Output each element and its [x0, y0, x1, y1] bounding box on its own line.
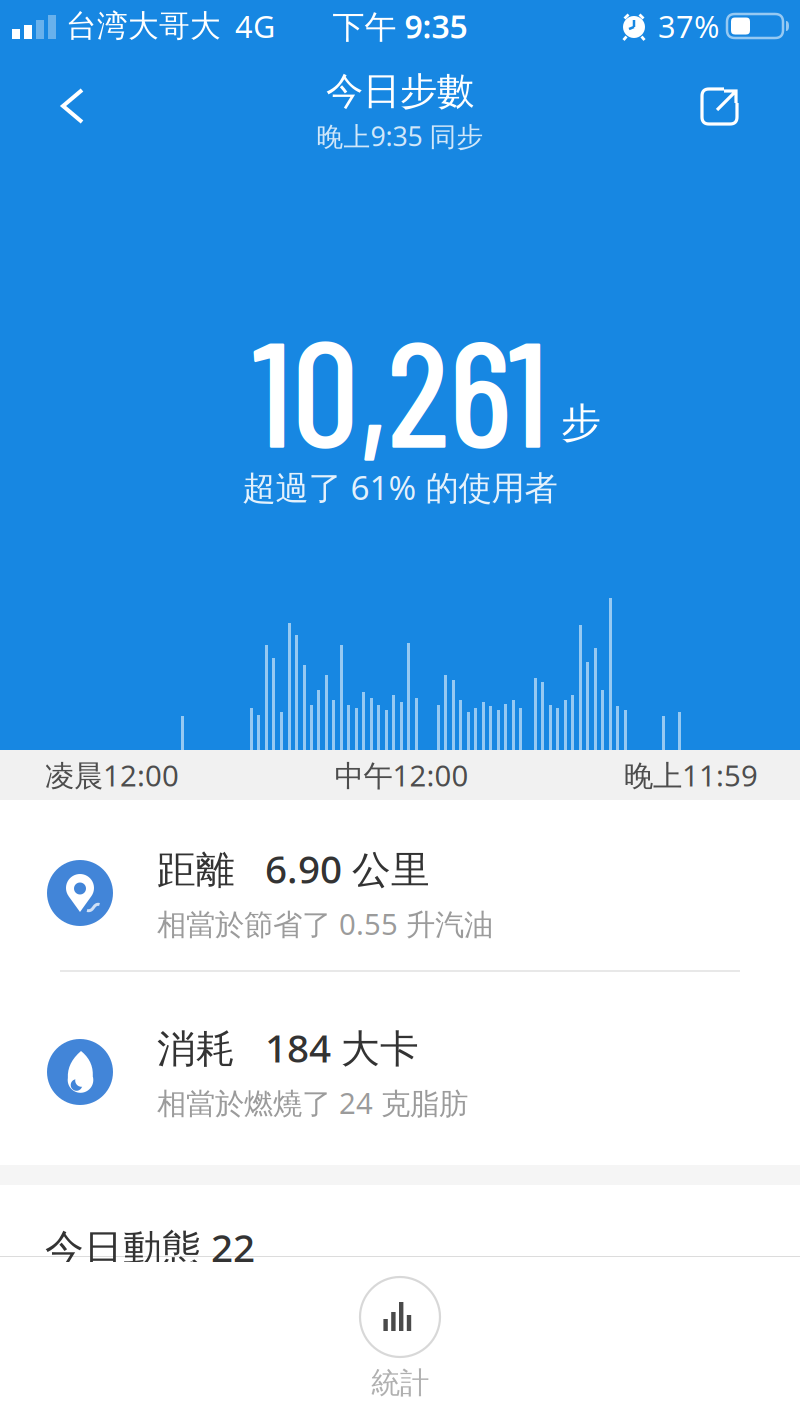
staticText: 晚上9:35 同步: [316, 118, 483, 154]
staticText: 37%: [658, 6, 719, 46]
staticText: 今日動態 22: [45, 1222, 255, 1273]
staticText: 中午12:00: [334, 755, 468, 794]
staticText: 下午 9:35: [332, 5, 467, 47]
button[interactable]: Share: [698, 84, 800, 128]
staticText: 超過了 61% 的使用者: [242, 465, 557, 509]
staticText: 消耗 184 大卡: [157, 1022, 419, 1073]
button[interactable]: 統計: [360, 1262, 440, 1401]
staticText: 今日步數: [326, 68, 474, 114]
staticText: 10,261: [252, 298, 548, 478]
staticText: 距離 6.90 公里: [157, 843, 430, 894]
staticText: 台湾大哥大: [66, 7, 221, 45]
staticText: 晚上11:59: [624, 755, 758, 794]
staticText: 凌晨12:00: [45, 755, 179, 794]
staticText: 相當於燃燒了 24 克脂肪: [157, 1083, 468, 1122]
staticText: 步: [561, 398, 601, 447]
staticText: 相當於節省了 0.55 升汽油: [157, 904, 493, 943]
staticText: 4G: [235, 6, 275, 46]
staticText: 統計: [371, 1365, 429, 1401]
button[interactable]: Back: [0, 86, 108, 126]
